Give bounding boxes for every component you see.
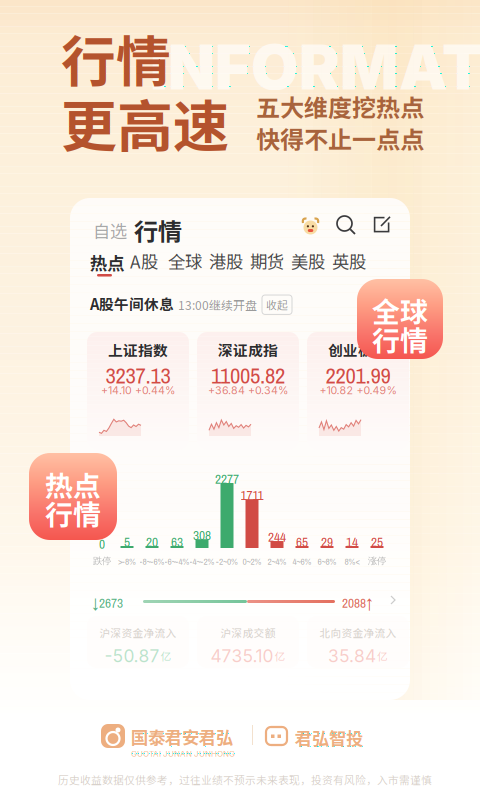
staticText: 历史收益数据仅供参考，过往业绩不预示未来表现，投资有风险，入市需谨慎 xyxy=(58,772,432,787)
staticText: 29 xyxy=(321,533,333,551)
button[interactable]: A股 xyxy=(129,250,159,272)
button[interactable]: 智能助手 xyxy=(301,216,320,235)
staticText: -50.87 xyxy=(104,645,159,666)
staticText: 热点 xyxy=(45,464,101,504)
staticText: 11005.82 xyxy=(211,360,285,390)
staticText: 港股 xyxy=(209,248,243,274)
staticText: INFORMATION xyxy=(150,30,480,104)
staticText: 美股 xyxy=(291,248,325,274)
staticText: 4735.10 xyxy=(210,645,273,666)
button[interactable]: 编辑 xyxy=(373,216,391,234)
staticText: 深证成指 xyxy=(218,339,278,360)
staticText: 全球 xyxy=(372,290,428,330)
staticText: 5 xyxy=(124,533,130,551)
staticText: GUOTAI JUNAN JUNHONG xyxy=(131,749,235,759)
staticText: +10.82 +0.49% xyxy=(319,384,396,397)
staticText: +14.10 +0.44% xyxy=(101,384,175,397)
staticText: 行情 xyxy=(61,18,171,97)
staticText: 6~8% xyxy=(317,555,336,568)
staticText: 2088↑ xyxy=(342,594,373,612)
staticText: 沪深资金净流入 xyxy=(99,625,176,640)
staticText: 25 xyxy=(371,533,383,551)
staticText: 跌停 xyxy=(93,555,111,567)
staticText: 13:00继续开盘 xyxy=(178,296,257,313)
staticText: -4~-2% xyxy=(189,555,214,568)
staticText: 亿 xyxy=(274,648,285,664)
staticText: 国泰君安君弘 xyxy=(131,724,233,749)
button[interactable]: 上证指数 xyxy=(87,332,189,450)
staticText: 自选 xyxy=(93,218,127,243)
staticText: >-8% xyxy=(118,555,136,568)
staticText: 热点 xyxy=(90,250,124,275)
staticText: 4~6% xyxy=(292,555,311,568)
button[interactable]: 全球 xyxy=(170,250,200,272)
staticText: 君弘智投 xyxy=(295,725,363,750)
staticText: 涨停 xyxy=(368,555,386,567)
staticText: 更高速 xyxy=(61,82,229,163)
staticText: -6~-4% xyxy=(164,555,189,568)
staticText: 0~2% xyxy=(242,555,261,568)
button[interactable]: 深证成指 xyxy=(197,332,299,450)
button[interactable]: 英股 xyxy=(334,250,364,272)
staticText: 行情 xyxy=(45,493,101,533)
button[interactable]: 港股 xyxy=(211,250,241,272)
staticText: +36.84 +0.34% xyxy=(208,384,288,397)
staticText: 北向资金净流入 xyxy=(319,625,396,640)
staticText: 8%< xyxy=(344,555,359,568)
staticText: -2~0% xyxy=(216,555,238,568)
staticText: 35.84 xyxy=(328,645,376,666)
staticText: 快得不止一点点 xyxy=(256,121,424,156)
staticText: 14 xyxy=(346,533,358,551)
staticText: 沪深成交额 xyxy=(220,625,275,640)
staticText: 2201.99 xyxy=(325,360,390,390)
staticText: 期货 xyxy=(250,248,284,274)
staticText: A股 xyxy=(130,248,158,274)
staticText: 英股 xyxy=(332,248,366,274)
staticText: 行情 xyxy=(134,213,182,248)
staticText: 63 xyxy=(171,533,183,551)
staticText: 2~4% xyxy=(267,555,286,568)
button[interactable]: 自选 xyxy=(93,218,127,243)
staticText: 0 xyxy=(99,535,105,553)
staticText: 20 xyxy=(146,533,158,551)
button[interactable]: 搜索 xyxy=(337,216,356,235)
staticText: 创业板指 xyxy=(328,339,388,360)
staticText: 3237.13 xyxy=(105,360,170,390)
staticText: 65 xyxy=(296,533,308,551)
staticText: 308 xyxy=(193,526,211,544)
button[interactable]: ↓2673 xyxy=(92,594,404,608)
staticText: 全球 xyxy=(168,248,202,274)
button[interactable]: 美股 xyxy=(293,250,323,272)
button[interactable]: 创业板指 xyxy=(307,332,409,450)
staticText: -8~-6% xyxy=(139,555,164,568)
staticText: 亿 xyxy=(377,648,388,664)
staticText: 亿 xyxy=(160,648,171,664)
button[interactable]: 热点 xyxy=(90,250,120,280)
staticText: 收起 xyxy=(266,297,288,312)
button[interactable]: 行情 xyxy=(134,213,182,248)
button[interactable]: 收起 xyxy=(262,295,292,314)
staticText: A股午间休息 xyxy=(90,293,174,314)
staticText: 上证指数 xyxy=(108,339,168,360)
staticText: 1711 xyxy=(240,486,263,504)
staticText: 五大维度挖热点 xyxy=(256,89,424,124)
staticText: ↓2673 xyxy=(92,594,123,612)
staticText: 244 xyxy=(268,528,286,546)
staticText: 2277 xyxy=(215,470,239,488)
staticText: 行情 xyxy=(372,319,428,359)
button[interactable]: 期货 xyxy=(252,250,282,272)
